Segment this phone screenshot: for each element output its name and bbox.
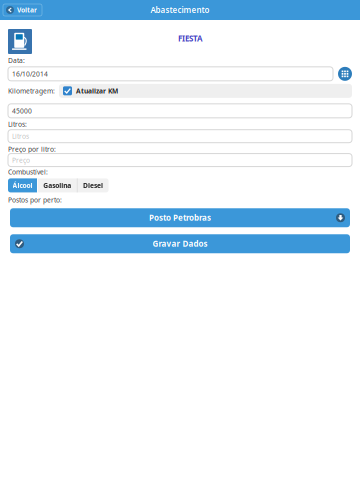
staticText: Abastecimento <box>150 5 209 15</box>
staticText: Gravar Dados <box>152 238 207 249</box>
staticText: Atualizar KM <box>76 86 118 95</box>
staticText: Preço por litro: <box>8 145 56 154</box>
button[interactable]: Voltar <box>3 4 42 16</box>
button[interactable]: Diesel <box>78 178 109 192</box>
staticText: Diesel <box>83 181 103 190</box>
staticText: Combustível: <box>8 168 48 176</box>
staticText: Voltar <box>17 6 37 14</box>
staticText: Preço <box>12 156 30 164</box>
staticText: 16/10/2014 <box>12 69 48 78</box>
staticText: Gasolina <box>43 181 71 190</box>
staticText: Álcool <box>12 181 32 190</box>
button[interactable]: Atualizar KM <box>59 84 352 98</box>
staticText: FIESTA <box>178 33 203 44</box>
staticText: Data: <box>8 56 25 65</box>
staticText: Kilometragem: <box>8 86 55 95</box>
button[interactable]: Álcool <box>8 178 37 192</box>
staticText: Postos por perto: <box>8 195 62 204</box>
button[interactable]: Posto Petrobras <box>8 208 352 227</box>
staticText: Litros: <box>8 120 27 129</box>
button[interactable]: Gravar Dados <box>8 234 352 253</box>
button[interactable]: Open calendar <box>338 67 352 81</box>
staticText: Posto Petrobras <box>149 212 211 223</box>
button[interactable]: Gasolina <box>38 178 77 192</box>
staticText: 45000 <box>12 106 32 115</box>
staticText: Litros <box>12 132 29 141</box>
